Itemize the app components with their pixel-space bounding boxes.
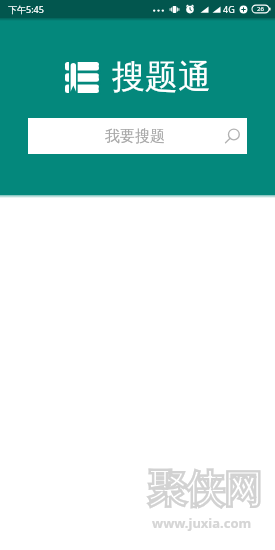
staticText: 搜题通 [112, 56, 211, 98]
button[interactable]: Search [223, 128, 240, 145]
staticText: 我要搜题 [105, 127, 165, 146]
staticText: 下午5:45 [8, 3, 44, 15]
staticText: 26 [257, 5, 264, 13]
staticText: 4G [223, 3, 235, 15]
button[interactable]: 我要搜题 [28, 118, 247, 154]
